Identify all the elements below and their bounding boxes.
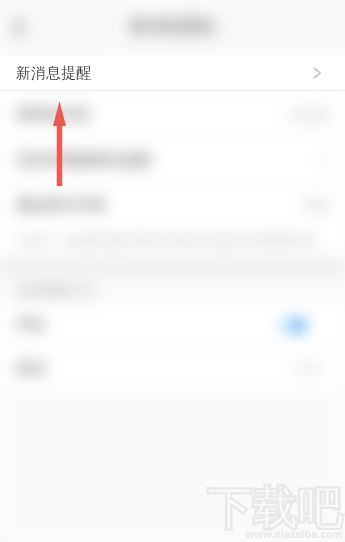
button[interactable]: 新消息提醒 xyxy=(0,56,345,92)
button[interactable]: 新消息提醒 xyxy=(0,56,345,90)
staticText: 新消息提醒 xyxy=(16,64,91,83)
staticText: 语音和视频通话提醒 xyxy=(16,151,151,170)
staticText: 消息提醒方式 xyxy=(16,282,94,298)
staticText: 新消息通知 xyxy=(130,16,215,37)
button[interactable]: 振动 xyxy=(0,346,345,390)
button[interactable]: 接收新消息 xyxy=(0,92,345,137)
staticText: 新消息提醒 xyxy=(16,65,91,84)
staticText: 下载吧 xyxy=(207,481,342,538)
button[interactable]: 语音和视频通话提醒 xyxy=(0,137,345,184)
staticText: 振动 xyxy=(16,359,46,378)
staticText: 声音 xyxy=(16,316,46,335)
staticText: www.xiazaiba.com xyxy=(245,527,343,541)
button[interactable]: 声音 xyxy=(0,304,345,346)
button[interactable]: 通知显示详情 xyxy=(0,184,345,226)
staticText: 通知显示详情 xyxy=(16,196,106,215)
staticText: 接收新消息 xyxy=(16,105,91,124)
